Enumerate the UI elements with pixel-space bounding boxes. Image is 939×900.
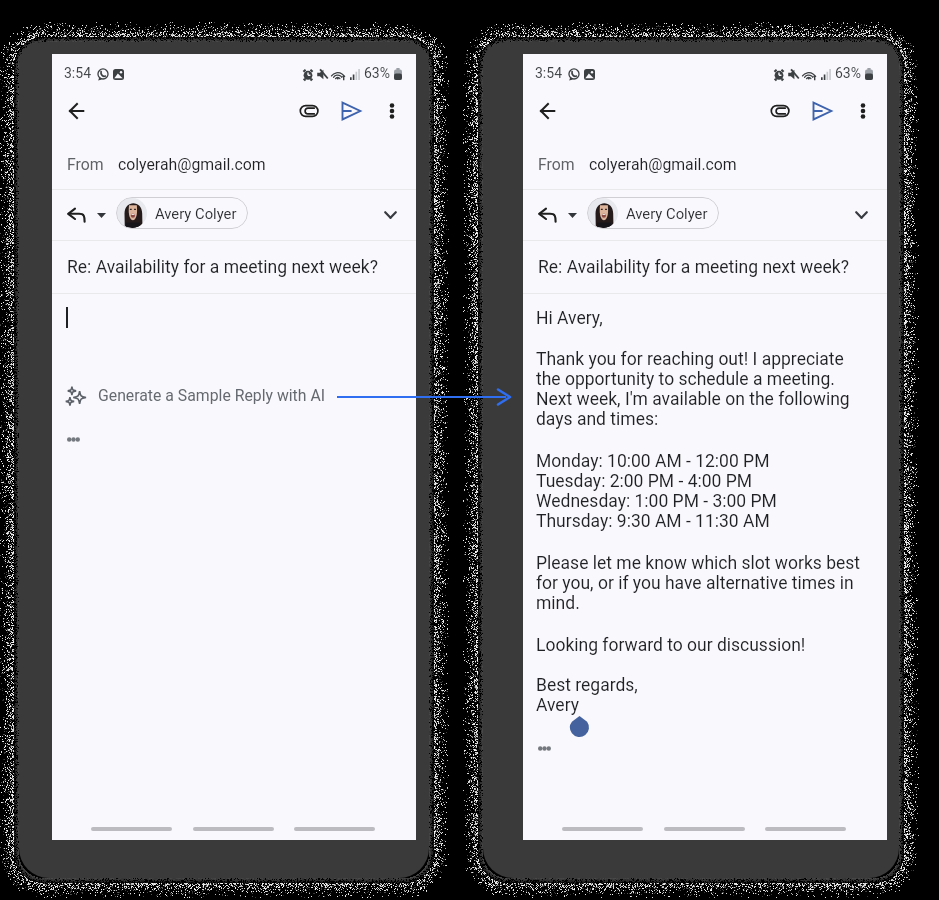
button[interactable]: Send [329, 89, 373, 133]
button[interactable]: Back [55, 89, 99, 133]
button[interactable]: Attach file [758, 89, 802, 133]
button[interactable]: More options [843, 91, 883, 131]
button[interactable]: Attach file [287, 89, 331, 133]
button[interactable]: Back [526, 89, 570, 133]
button[interactable]: Re: Availability for a meeting next week… [67, 241, 416, 293]
button[interactable]: Navigation [562, 827, 643, 831]
staticText: 63% [835, 65, 861, 81]
button[interactable]: Navigation [193, 827, 274, 831]
staticText: From [538, 155, 575, 174]
staticText: 3:54 [535, 65, 562, 81]
staticText: Avery Colyer [155, 205, 237, 222]
button[interactable]: Reply options [88, 202, 114, 228]
button[interactable]: More options [372, 91, 412, 131]
staticText: colyerah@gmail.com [589, 155, 737, 174]
staticText: Re: Availability for a meeting next week… [67, 257, 378, 278]
button[interactable]: Reply [60, 198, 94, 232]
button[interactable]: Navigation [664, 827, 745, 831]
staticText: Please let me know which slot works best… [536, 553, 861, 613]
button[interactable]: Navigation [91, 827, 172, 831]
staticText: 3:54 [64, 65, 91, 81]
button[interactable]: Navigation [765, 827, 846, 831]
staticText: From [67, 155, 104, 174]
staticText: Avery Colyer [626, 205, 708, 222]
staticText: Re: Availability for a meeting next week… [538, 257, 849, 278]
button[interactable]: From [67, 139, 416, 189]
button[interactable]: Reply [531, 198, 565, 232]
button[interactable]: Generate a Sample Reply with AI [62, 380, 342, 412]
button[interactable]: Reply options [559, 202, 585, 228]
staticText: Thank you for reaching out! I appreciate… [536, 349, 850, 429]
button[interactable]: Show details [844, 197, 879, 232]
staticText: colyerah@gmail.com [118, 155, 266, 174]
button[interactable]: From [538, 139, 887, 189]
button[interactable]: Avery Colyer [587, 197, 719, 229]
button[interactable]: Send [800, 89, 844, 133]
staticText: 63% [364, 65, 390, 81]
button[interactable]: Re: Availability for a meeting next week… [538, 241, 887, 293]
button[interactable]: Avery Colyer [116, 197, 248, 229]
staticText: Best regards, Avery [536, 675, 638, 715]
button[interactable]: Show details [373, 197, 408, 232]
staticText: Looking forward to our discussion! [536, 635, 806, 655]
button[interactable]: Navigation [294, 827, 375, 831]
staticText: Hi Avery, [536, 308, 603, 328]
staticText: Monday: 10:00 AM - 12:00 PM Tuesday: 2:0… [536, 451, 777, 531]
staticText: Generate a Sample Reply with AI [98, 386, 325, 405]
